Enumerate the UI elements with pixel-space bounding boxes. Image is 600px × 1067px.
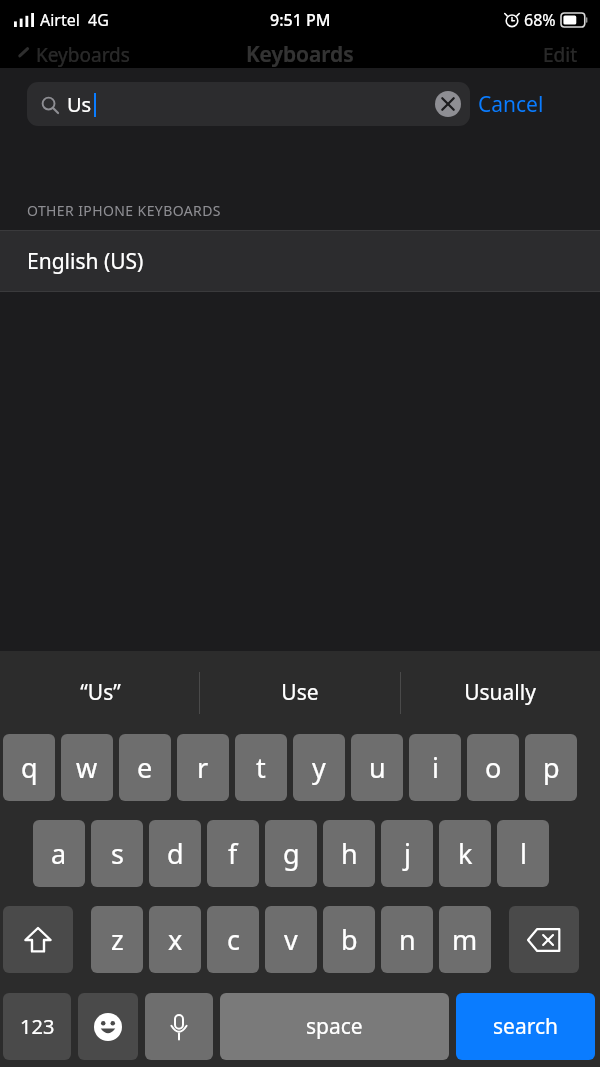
staticText: z bbox=[111, 921, 124, 958]
staticText: r bbox=[197, 749, 209, 786]
button[interactable]: Cancel bbox=[478, 82, 544, 126]
button[interactable]: “Us” bbox=[0, 651, 200, 734]
button[interactable]: r bbox=[177, 734, 229, 801]
button[interactable]: Shift bbox=[3, 906, 73, 973]
staticText: 4G bbox=[88, 9, 109, 31]
button[interactable]: t bbox=[235, 734, 287, 801]
staticText: v bbox=[284, 921, 298, 958]
button[interactable]: j bbox=[381, 820, 433, 887]
staticText: j bbox=[404, 835, 411, 872]
button[interactable]: y bbox=[293, 734, 345, 801]
button[interactable]: w bbox=[61, 734, 113, 801]
button[interactable]: Dictation bbox=[145, 993, 213, 1060]
staticText: Keyboards bbox=[246, 40, 354, 68]
button[interactable]: n bbox=[381, 906, 433, 973]
staticText: search bbox=[493, 1012, 558, 1041]
button[interactable]: space bbox=[220, 993, 449, 1060]
staticText: English (US) bbox=[27, 247, 144, 276]
staticText: t bbox=[256, 749, 266, 786]
button[interactable]: v bbox=[265, 906, 317, 973]
staticText: 68% bbox=[524, 9, 556, 31]
button[interactable]: u bbox=[351, 734, 403, 801]
button[interactable]: c bbox=[207, 906, 259, 973]
button[interactable]: g bbox=[265, 820, 317, 887]
staticText: Use bbox=[281, 678, 319, 707]
staticText: Us bbox=[67, 91, 92, 118]
button[interactable]: m bbox=[439, 906, 491, 973]
staticText: Edit bbox=[543, 42, 578, 68]
staticText: Airtel bbox=[40, 9, 80, 31]
button[interactable]: o bbox=[467, 734, 519, 801]
button[interactable]: e bbox=[119, 734, 171, 801]
button[interactable]: Clear text bbox=[435, 91, 461, 117]
staticText: l bbox=[520, 835, 527, 872]
button[interactable]: b bbox=[323, 906, 375, 973]
staticText: w bbox=[76, 749, 98, 786]
staticText: e bbox=[137, 749, 153, 786]
staticText: b bbox=[341, 921, 358, 958]
button[interactable]: x bbox=[149, 906, 201, 973]
button[interactable]: h bbox=[323, 820, 375, 887]
button[interactable]: p bbox=[525, 734, 577, 801]
staticText: a bbox=[51, 835, 67, 872]
button[interactable]: Backspace bbox=[509, 906, 579, 973]
button[interactable]: s bbox=[91, 820, 143, 887]
staticText: s bbox=[111, 835, 124, 872]
staticText: f bbox=[228, 835, 238, 872]
staticText: n bbox=[399, 921, 416, 958]
button[interactable]: d bbox=[149, 820, 201, 887]
button[interactable]: 123 bbox=[3, 993, 71, 1060]
button[interactable]: q bbox=[3, 734, 55, 801]
staticText: c bbox=[227, 921, 240, 958]
staticText: g bbox=[283, 835, 300, 872]
button[interactable]: Us bbox=[27, 82, 470, 126]
staticText: 123 bbox=[20, 1013, 55, 1040]
button[interactable]: k bbox=[439, 820, 491, 887]
button[interactable]: a bbox=[33, 820, 85, 887]
button[interactable]: Use bbox=[200, 651, 400, 734]
staticText: x bbox=[168, 921, 183, 958]
button[interactable]: l bbox=[497, 820, 549, 887]
button[interactable]: Usually bbox=[400, 651, 600, 734]
staticText: 9:51 PM bbox=[270, 9, 331, 31]
staticText: h bbox=[341, 835, 358, 872]
staticText: d bbox=[167, 835, 184, 872]
button[interactable]: f bbox=[207, 820, 259, 887]
staticText: OTHER IPHONE KEYBOARDS bbox=[27, 201, 221, 220]
staticText: space bbox=[306, 1012, 363, 1041]
staticText: i bbox=[432, 749, 439, 786]
staticText: Cancel bbox=[478, 90, 544, 119]
staticText: m bbox=[452, 921, 478, 958]
staticText: k bbox=[458, 835, 473, 872]
button[interactable]: Emoji bbox=[78, 993, 138, 1060]
staticText: Keyboards bbox=[36, 42, 130, 68]
staticText: q bbox=[21, 749, 38, 786]
staticText: Usually bbox=[464, 678, 536, 707]
staticText: “Us” bbox=[80, 678, 121, 707]
button[interactable]: z bbox=[91, 906, 143, 973]
button[interactable]: search bbox=[456, 993, 595, 1060]
staticText: u bbox=[369, 749, 386, 786]
staticText: p bbox=[543, 749, 560, 786]
button[interactable]: i bbox=[409, 734, 461, 801]
staticText: o bbox=[485, 749, 502, 786]
button[interactable]: English (US) bbox=[0, 231, 600, 291]
staticText: y bbox=[312, 749, 326, 786]
